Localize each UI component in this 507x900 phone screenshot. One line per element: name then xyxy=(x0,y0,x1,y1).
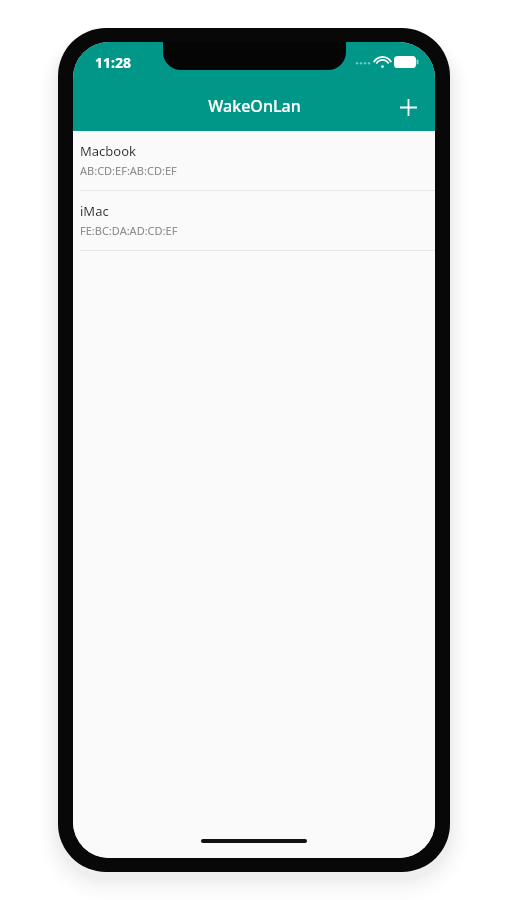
button[interactable]: iMac xyxy=(73,191,435,250)
staticText: FE:BC:DA:AD:CD:EF xyxy=(80,223,178,238)
button[interactable]: Macbook xyxy=(73,131,435,190)
button[interactable]: Add device xyxy=(386,85,430,129)
staticText: Macbook xyxy=(80,142,136,160)
staticText: WakeOnLan xyxy=(208,95,301,117)
staticText: iMac xyxy=(80,202,109,220)
staticText: 11:28 xyxy=(95,53,131,72)
staticText: AB:CD:EF:AB:CD:EF xyxy=(80,163,177,178)
